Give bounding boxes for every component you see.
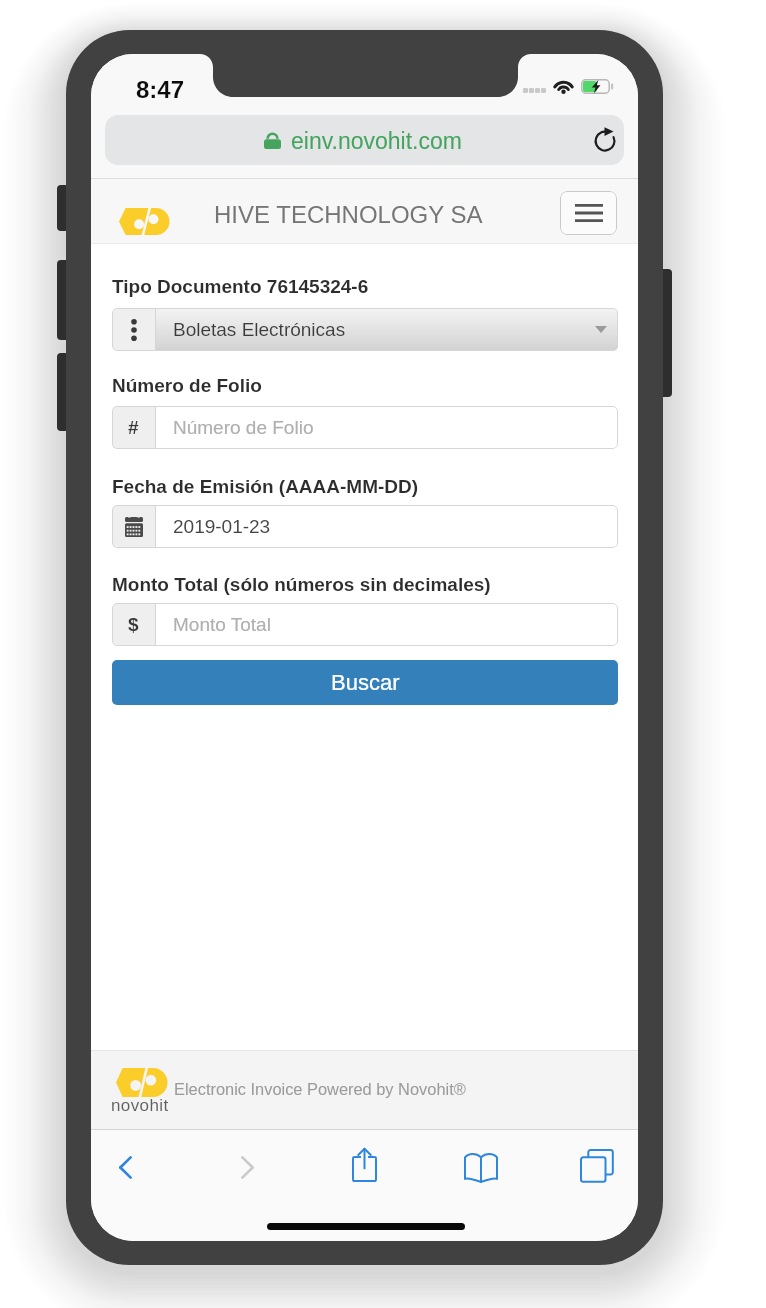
- button[interactable]: Menu: [560, 191, 617, 235]
- button[interactable]: Share: [335, 1133, 393, 1195]
- staticText: #: [128, 417, 139, 438]
- button[interactable]: Bookmarks: [452, 1136, 510, 1198]
- staticText: 2019-01-23: [173, 516, 271, 537]
- button[interactable]: Back: [96, 1136, 154, 1198]
- staticText: Boletas Electrónicas: [173, 319, 346, 340]
- staticText: Número de Folio: [112, 375, 262, 396]
- button[interactable]: Buscar: [112, 660, 618, 705]
- button[interactable]: 2019-01-23: [112, 505, 618, 548]
- button[interactable]: #: [112, 406, 618, 449]
- staticText: 8:47: [136, 76, 185, 103]
- button[interactable]: [105, 115, 624, 165]
- staticText: Buscar: [331, 670, 400, 695]
- button[interactable]: Tabs: [567, 1134, 625, 1196]
- staticText: Electronic Invoice Powered by Novohit®: [174, 1080, 466, 1098]
- staticText: HIVE TECHNOLOGY SA: [214, 201, 483, 228]
- staticText: novohit: [111, 1096, 169, 1115]
- staticText: Fecha de Emisión (AAAA-MM-DD): [112, 476, 419, 497]
- button[interactable]: Reload: [587, 124, 623, 156]
- button[interactable]: $: [112, 603, 618, 646]
- staticText: Monto Total: [173, 614, 271, 635]
- staticText: Tipo Documento 76145324-6: [112, 276, 369, 297]
- button[interactable]: Boletas Electrónicas: [112, 308, 618, 351]
- staticText: Monto Total (sólo números sin decimales): [112, 574, 491, 595]
- staticText: $: [128, 614, 139, 635]
- staticText: Número de Folio: [173, 417, 314, 438]
- staticText: einv.novohit.com: [291, 128, 462, 154]
- button[interactable]: Forward: [218, 1136, 276, 1198]
